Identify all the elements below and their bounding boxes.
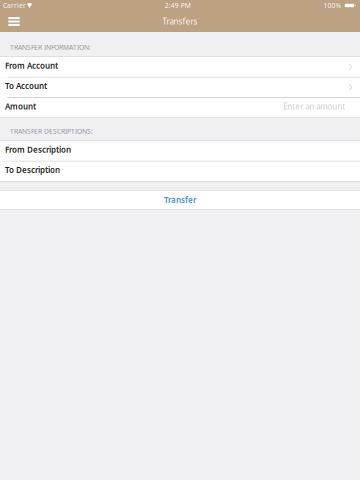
staticText: TRANSFER DESCRIPTIONS:	[10, 127, 93, 136]
button[interactable]: Menu	[0, 11, 28, 32]
staticText: Transfers	[162, 16, 197, 27]
staticText: 100%	[323, 1, 341, 10]
staticText: Carrier	[3, 1, 26, 10]
staticText: Enter an amount	[283, 101, 345, 112]
staticText: TRANSFER INFORMATION:	[10, 43, 91, 52]
button[interactable]: To Description	[0, 161, 360, 181]
button[interactable]: Amount	[0, 98, 360, 118]
button[interactable]: Transfer	[0, 190, 360, 210]
staticText: 2:49 PM	[165, 1, 191, 10]
button[interactable]: To Account	[0, 77, 360, 97]
button[interactable]: From Account	[0, 57, 360, 77]
staticText: To Account	[5, 81, 47, 91]
staticText: Amount	[5, 101, 36, 112]
button[interactable]: From Description	[0, 141, 360, 161]
staticText: To Description	[5, 165, 60, 175]
staticText: From Description	[5, 144, 71, 155]
staticText: Transfer	[164, 195, 196, 205]
staticText: From Account	[5, 60, 58, 71]
